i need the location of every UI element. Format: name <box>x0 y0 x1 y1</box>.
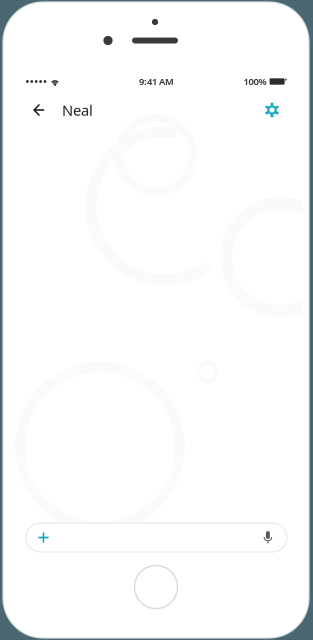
button[interactable]: Settings <box>258 96 286 124</box>
button[interactable]: Back <box>27 96 51 124</box>
staticText: Neal <box>62 100 93 120</box>
staticText: 9:41 AM <box>139 75 174 88</box>
button[interactable]: Neal <box>51 96 104 124</box>
button[interactable]: Message field <box>26 523 287 552</box>
staticText: 100% <box>244 75 267 88</box>
